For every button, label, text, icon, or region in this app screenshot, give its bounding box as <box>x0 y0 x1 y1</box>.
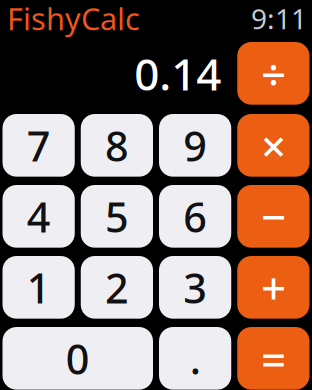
button[interactable]: 5 <box>81 185 153 248</box>
staticText: ÷ <box>261 44 286 102</box>
staticText: 9 <box>183 118 207 173</box>
button[interactable]: ÷ <box>237 42 309 105</box>
button[interactable]: 2 <box>81 256 153 319</box>
staticText: − <box>261 187 286 245</box>
button[interactable]: 4 <box>2 185 75 248</box>
staticText: × <box>261 116 286 174</box>
button[interactable]: 3 <box>159 256 231 319</box>
button[interactable]: . <box>159 327 231 390</box>
staticText: 0.14 <box>134 44 221 102</box>
staticText: = <box>261 329 286 387</box>
staticText: 9:11 <box>251 0 307 37</box>
button[interactable]: + <box>237 256 309 319</box>
button[interactable]: = <box>237 327 309 390</box>
staticText: + <box>261 258 286 316</box>
button[interactable]: 1 <box>2 256 75 319</box>
staticText: 5 <box>105 189 129 244</box>
staticText: 6 <box>183 189 207 244</box>
staticText: 7 <box>27 118 51 173</box>
button[interactable]: − <box>237 185 309 248</box>
button[interactable]: 6 <box>159 185 231 248</box>
button[interactable]: × <box>237 114 309 177</box>
staticText: FishyCalc <box>7 0 140 39</box>
button[interactable]: 0 <box>2 327 153 390</box>
staticText: 2 <box>105 260 129 315</box>
staticText: . <box>190 331 201 386</box>
staticText: 0 <box>66 331 90 386</box>
staticText: 3 <box>183 260 207 315</box>
staticText: 8 <box>105 118 129 173</box>
button[interactable]: 7 <box>2 114 75 177</box>
button[interactable]: 9 <box>159 114 231 177</box>
staticText: 4 <box>27 189 51 244</box>
button[interactable]: 8 <box>81 114 153 177</box>
staticText: 1 <box>27 260 51 315</box>
